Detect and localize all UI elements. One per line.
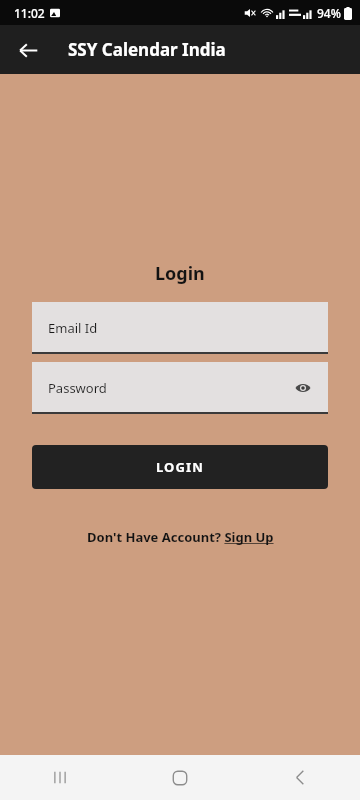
button[interactable]: Don't Have Account? Sign Up [81, 525, 280, 549]
staticText: Don't Have Account? Sign Up [87, 528, 274, 546]
button[interactable]: Back [6, 28, 50, 72]
button[interactable]: Password [32, 362, 328, 414]
button[interactable]: Recents [0, 755, 120, 800]
staticText: LOGIN [156, 458, 204, 476]
button[interactable]: Email Id [32, 302, 328, 354]
staticText: Email Id [48, 319, 98, 337]
staticText: Login [155, 261, 205, 286]
staticText: 94% [317, 5, 341, 21]
button[interactable]: LOGIN [32, 445, 328, 489]
button[interactable]: Show password [288, 373, 318, 403]
staticText: SSY Calendar India [68, 38, 226, 61]
button[interactable]: Home [120, 755, 240, 800]
button[interactable]: Back [240, 755, 360, 800]
staticText: Password [48, 379, 107, 397]
staticText: 11:02 [14, 5, 45, 21]
